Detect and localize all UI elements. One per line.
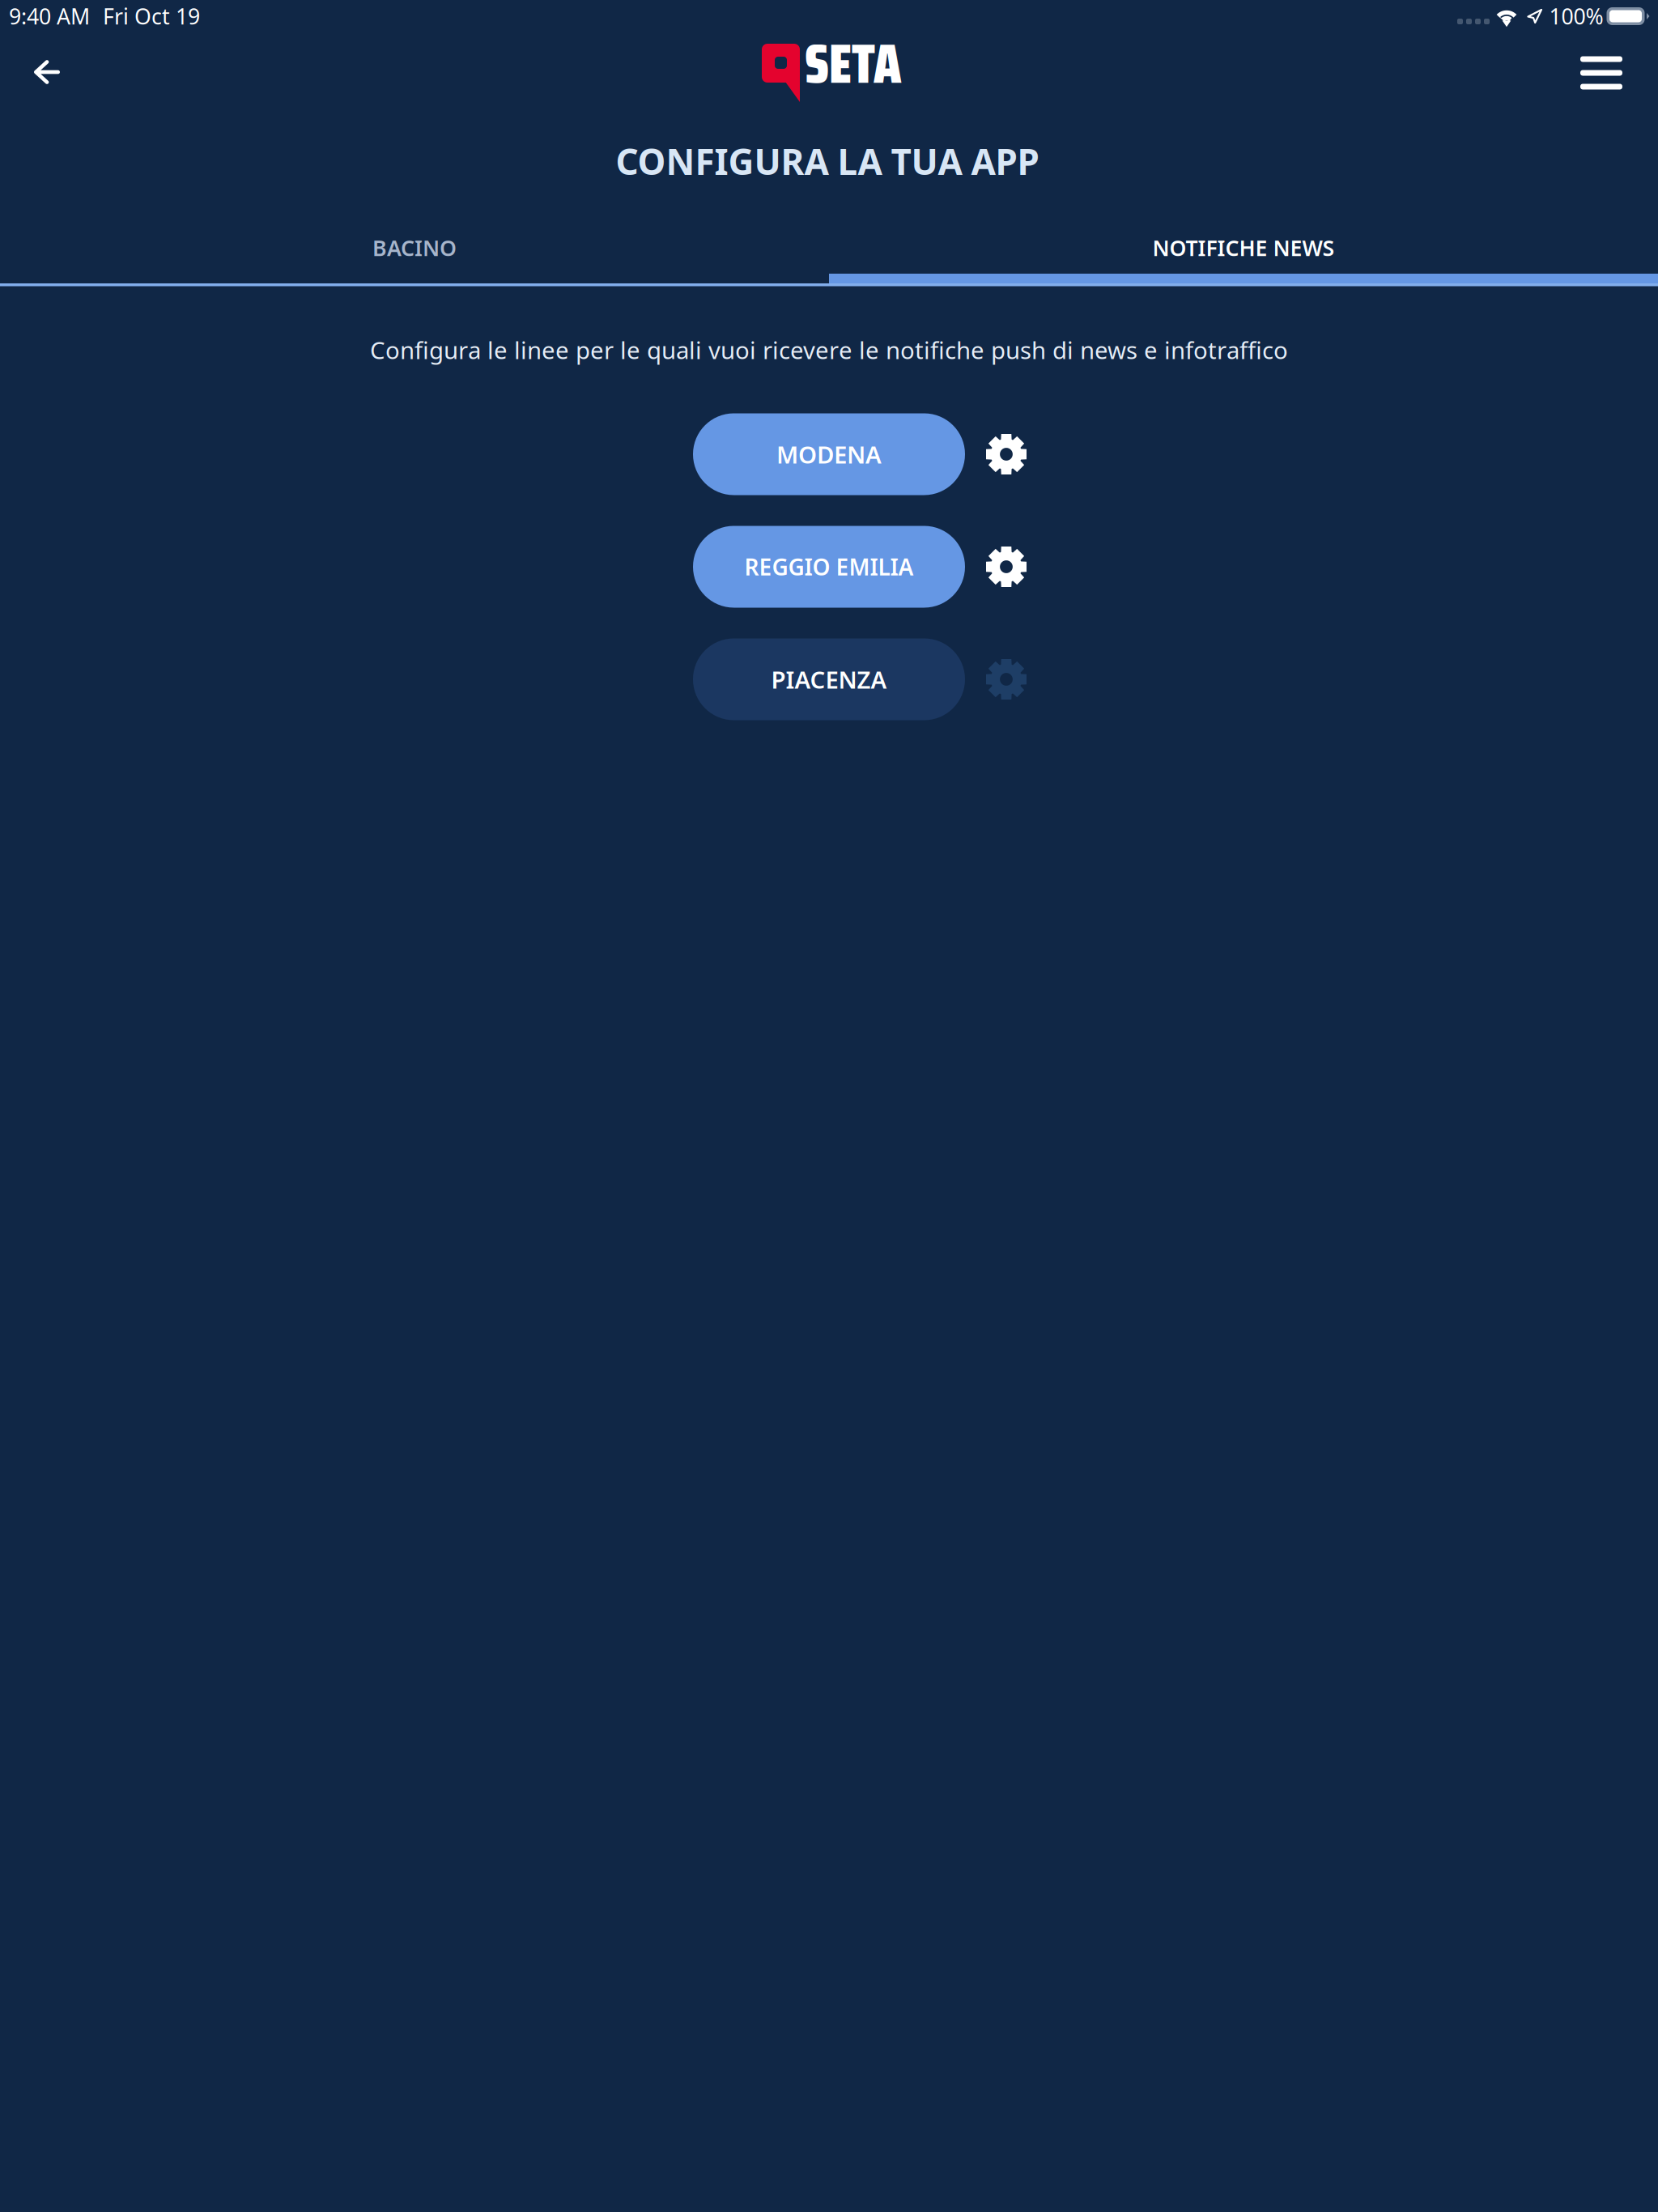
staticText: CONFIGURA LA TUA APP <box>616 137 1039 185</box>
button[interactable]: PIACENZA <box>693 638 965 720</box>
button[interactable]: Impostazioni MODENA <box>986 413 1027 495</box>
staticText: REGGIO EMILIA <box>744 552 914 582</box>
staticText: Configura le linee per le quali vuoi ric… <box>370 334 1288 366</box>
button[interactable]: Impostazioni REGGIO EMILIA <box>986 526 1027 608</box>
staticText: PIACENZA <box>771 664 887 695</box>
button[interactable]: BACINO <box>0 211 829 284</box>
staticText: MODENA <box>776 438 882 470</box>
staticText: 9:40 AM <box>9 2 90 31</box>
staticText: SETA <box>805 21 901 106</box>
button[interactable]: REGGIO EMILIA <box>693 526 965 608</box>
button[interactable]: MODENA <box>693 413 965 495</box>
staticText: Fri Oct 19 <box>103 2 200 31</box>
staticText: NOTIFICHE NEWS <box>1152 233 1335 262</box>
staticText: 100% <box>1549 2 1603 31</box>
staticText: BACINO <box>372 233 457 262</box>
button[interactable]: Indietro <box>14 40 80 104</box>
button[interactable]: NOTIFICHE NEWS <box>829 211 1658 284</box>
button[interactable]: Impostazioni PIACENZA <box>986 638 1027 720</box>
button[interactable]: Menu <box>1562 38 1640 107</box>
